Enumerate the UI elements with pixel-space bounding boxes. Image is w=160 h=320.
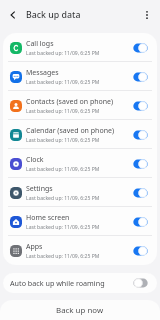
staticText: Last backed up: 11/09, 6:25 PM	[26, 79, 100, 86]
button[interactable]: Toggle on	[133, 246, 148, 256]
staticText: Last backed up: 11/09, 6:25 PM	[26, 166, 100, 173]
button[interactable]: More options	[140, 8, 154, 22]
button[interactable]: Toggle on	[133, 130, 148, 140]
staticText: Last backed up: 11/09, 6:25 PM	[26, 253, 100, 260]
staticText: Last backed up: 11/09, 6:25 PM	[26, 224, 100, 231]
button[interactable]: Apps	[3, 236, 157, 265]
button[interactable]: Contacts (saved on phone)	[3, 91, 157, 120]
staticText: Auto back up while roaming	[10, 278, 133, 288]
button[interactable]: Clock	[3, 149, 157, 178]
button[interactable]: Toggle on	[133, 72, 148, 82]
staticText: Back up data	[26, 9, 81, 21]
staticText: Home screen	[26, 213, 70, 223]
button[interactable]: Auto back up while roaming	[3, 273, 157, 293]
staticText: Messages	[26, 68, 59, 78]
button[interactable]: Toggle on	[133, 217, 148, 227]
staticText: Contacts (saved on phone)	[26, 97, 114, 107]
button[interactable]: Toggle on	[133, 188, 148, 198]
staticText: Last backed up: 11/09, 6:25 PM	[26, 137, 100, 144]
button[interactable]: Messages	[3, 62, 157, 91]
button[interactable]: Calendar (saved on phone)	[3, 120, 157, 149]
button[interactable]: Toggle on	[133, 159, 148, 169]
staticText: Back up now	[56, 305, 104, 316]
staticText: Clock	[26, 155, 44, 165]
button[interactable]: Toggle off	[133, 278, 148, 288]
button[interactable]: Back up now	[0, 300, 160, 320]
staticText: Apps	[26, 242, 43, 252]
button[interactable]: Navigate up	[6, 8, 20, 22]
button[interactable]: Home screen	[3, 207, 157, 236]
staticText: Last backed up: 11/09, 6:25 PM	[26, 50, 100, 57]
button[interactable]: Call logs	[3, 33, 157, 62]
staticText: Settings	[26, 184, 53, 194]
staticText: Calendar (saved on phone)	[26, 126, 115, 136]
staticText: Call logs	[26, 39, 54, 49]
button[interactable]: Toggle on	[133, 43, 148, 53]
button[interactable]: Toggle on	[133, 101, 148, 111]
staticText: Last backed up: 11/09, 6:25 PM	[26, 195, 100, 202]
button[interactable]: Settings	[3, 178, 157, 207]
staticText: Last backed up: 11/09, 6:25 PM	[26, 108, 100, 115]
